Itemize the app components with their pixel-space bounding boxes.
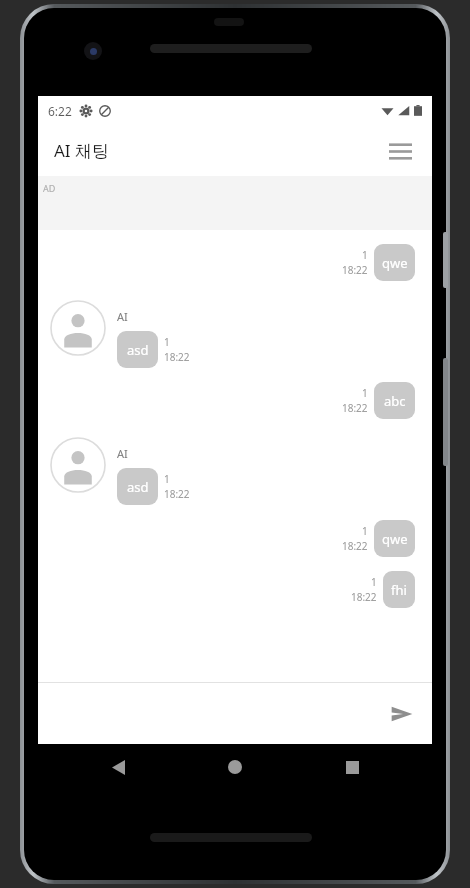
staticText: AI [117,309,128,324]
staticText: 18:22 [342,539,368,553]
staticText: 1 [362,248,368,262]
staticText: 18:22 [164,350,190,364]
button[interactable]: Menu [380,131,420,171]
staticText: 1 [362,524,368,538]
staticText: 18:22 [342,401,368,415]
staticText: fhi [391,581,407,599]
staticText: AI [117,446,128,461]
button[interactable]: 1 [38,520,415,557]
button[interactable]: AI avatar [50,437,432,505]
staticText: asd [127,478,149,496]
other: AI avatar [50,437,106,493]
staticText: 1 [362,386,368,400]
button[interactable]: Send [382,694,422,734]
staticText: 18:22 [342,263,368,277]
button[interactable]: Home [217,749,253,785]
button[interactable]: 1 [38,571,415,608]
button[interactable]: AI avatar [50,300,432,368]
staticText: qwe [382,254,408,272]
staticText: 1 [164,335,170,349]
staticText: abc [384,392,406,410]
staticText: 1 [371,575,377,589]
other: AI avatar [50,300,106,356]
staticText: 6:22 [48,103,72,119]
staticText: 18:22 [351,590,377,604]
button[interactable]: Recent apps [334,749,370,785]
button[interactable]: Back [100,749,136,785]
staticText: AD [43,182,56,194]
staticText: 18:22 [164,487,190,501]
staticText: qwe [382,530,408,548]
button[interactable]: 1 [38,244,415,281]
button[interactable]: 1 [38,382,415,419]
staticText: AI 채팅 [54,139,110,162]
staticText: 1 [164,472,170,486]
staticText: asd [127,341,149,359]
